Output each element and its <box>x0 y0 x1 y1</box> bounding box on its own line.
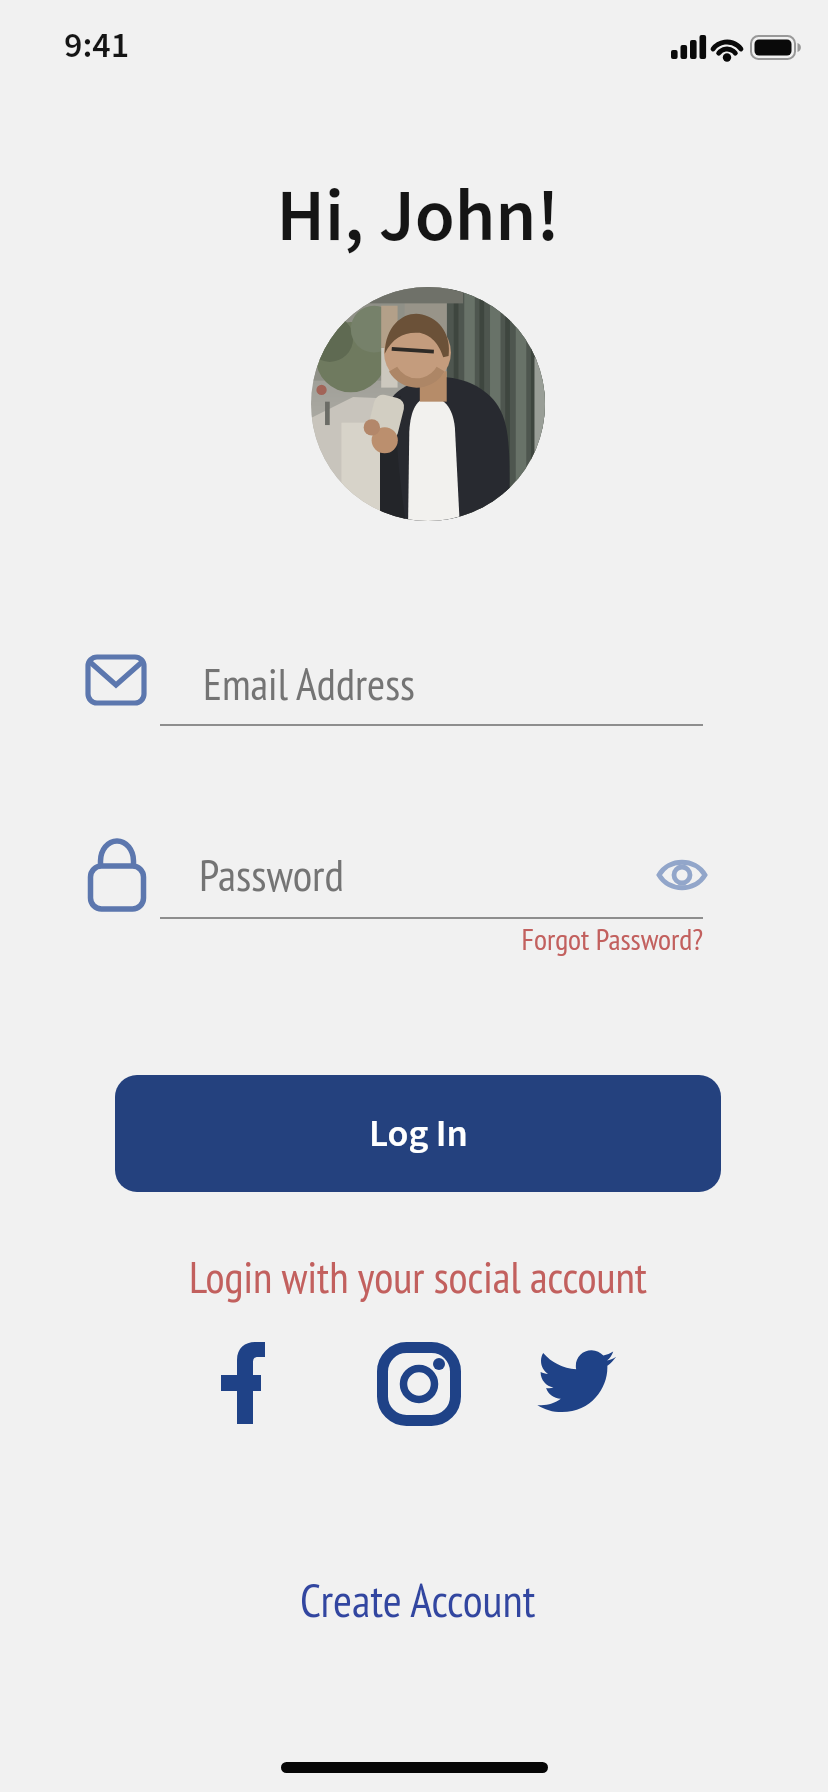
button[interactable]: Create Account <box>300 1570 536 1630</box>
button[interactable]: Email Address <box>160 645 703 726</box>
button[interactable]: Password <box>160 838 703 919</box>
staticText: Hi, John! <box>4 165 828 269</box>
staticText: Log In <box>369 1107 468 1161</box>
button[interactable] <box>530 1348 618 1420</box>
staticText: 9:41 <box>64 20 130 71</box>
staticText: Email Address <box>203 655 415 712</box>
button[interactable] <box>657 856 707 894</box>
staticText: Forgot Password? <box>403 919 703 958</box>
staticText: Create Account <box>300 1570 536 1630</box>
button[interactable]: Log In <box>115 1075 721 1192</box>
button[interactable]: Forgot Password? <box>403 919 703 959</box>
button[interactable] <box>213 1342 271 1424</box>
staticText: Password <box>199 845 344 903</box>
staticText: Login with your social account <box>4 1248 828 1305</box>
button[interactable] <box>377 1342 461 1426</box>
